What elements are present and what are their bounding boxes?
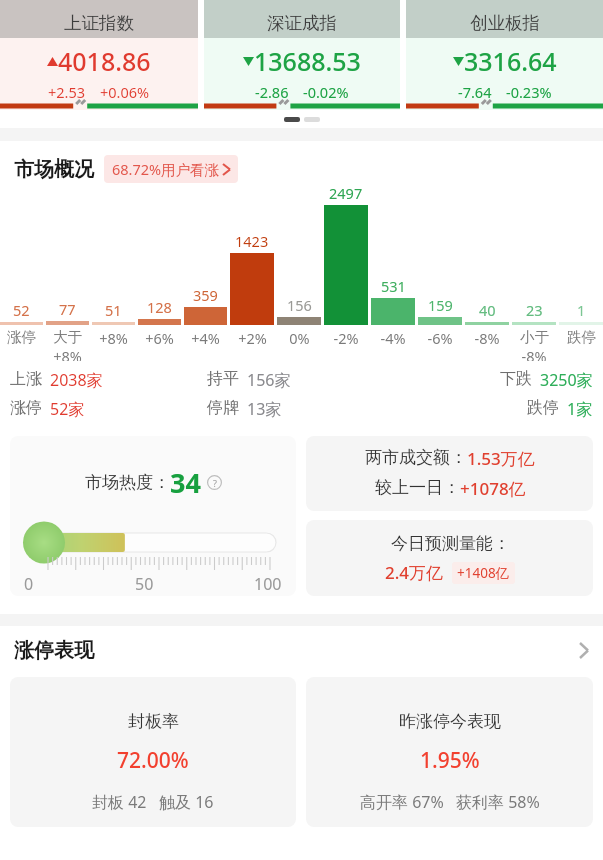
staticText: -8% [521, 346, 547, 361]
staticText: 今日预测量能： [391, 533, 510, 554]
staticText: 1423 [235, 231, 269, 251]
staticText: 封板率 [128, 711, 179, 732]
button[interactable]: 深证成指 [204, 0, 400, 110]
staticText: 0% [289, 328, 310, 348]
staticText: 0 [24, 573, 34, 595]
staticText: 市场概况 [14, 157, 94, 182]
staticText: 创业板指 [470, 12, 540, 34]
staticText: 52家 [50, 398, 85, 420]
staticText: 34 [170, 464, 201, 501]
staticText: 1.95% [420, 746, 480, 775]
staticText: 上证指数 [64, 12, 134, 34]
staticText: 159 [428, 295, 453, 315]
staticText: +4% [191, 328, 220, 348]
staticText: 23 [526, 300, 543, 320]
staticText: 156家 [247, 369, 291, 391]
staticText: 13688.53 [254, 44, 361, 78]
button[interactable]: 涨停表现 [0, 638, 603, 663]
other: 更多 [579, 642, 589, 659]
staticText: 2497 [329, 183, 363, 203]
staticText: 100 [254, 573, 282, 595]
staticText: 68.72%用户看涨 [112, 159, 220, 179]
button[interactable]: 封板率 [10, 677, 296, 827]
staticText: +8% [53, 346, 82, 361]
button[interactable]: 今日预测量能： [306, 520, 593, 596]
staticText: 77 [59, 299, 76, 319]
staticText: 51 [105, 300, 122, 320]
staticText: 50 [135, 573, 154, 595]
staticText: 1家 [567, 398, 593, 420]
staticText: 昨涨停今表现 [399, 711, 501, 732]
staticText: 3316.64 [464, 44, 557, 78]
staticText: -0.23% [506, 82, 552, 102]
staticText: +6% [145, 328, 174, 348]
staticText: 深证成指 [267, 12, 337, 34]
button[interactable]: 市场热度： [10, 436, 296, 596]
staticText: 下跌 [500, 369, 532, 389]
staticText: -6% [427, 328, 453, 348]
staticText: 封板 42 [92, 791, 147, 813]
staticText: 3250家 [540, 369, 593, 391]
staticText: 359 [193, 285, 218, 305]
button[interactable]: 两市成交额： [306, 436, 593, 511]
staticText: 跌停 [567, 328, 596, 346]
staticText: 涨停表现 [14, 638, 94, 663]
staticText: 小于 [520, 328, 549, 346]
staticText: 156 [287, 295, 312, 315]
staticText: +1078亿 [460, 477, 526, 500]
staticText: +8% [99, 328, 128, 348]
staticText: 涨停 [10, 398, 42, 418]
staticText: +0.06% [100, 82, 150, 102]
staticText: 持平 [207, 369, 239, 389]
button[interactable]: 68.72%用户看涨 [104, 155, 238, 183]
staticText: 4018.86 [58, 44, 151, 78]
staticText: -2% [333, 328, 359, 348]
staticText: 40 [479, 300, 496, 320]
staticText: 2038家 [50, 369, 103, 391]
staticText: 1.53万亿 [467, 447, 535, 470]
button[interactable]: 昨涨停今表现 [306, 677, 593, 827]
staticText: 2.4万亿 [385, 561, 444, 584]
staticText: 市场热度： [85, 472, 170, 493]
staticText: +2.53 [48, 82, 86, 102]
staticText: -2.86 [255, 82, 289, 102]
button[interactable]: 说明 [207, 475, 222, 490]
staticText: 高开率 67% [360, 791, 444, 813]
staticText: 72.00% [117, 746, 189, 775]
button[interactable]: 上证指数 [0, 0, 198, 110]
staticText: +1408亿 [457, 564, 510, 582]
staticText: 128 [147, 297, 172, 317]
staticText: 获利率 58% [456, 791, 540, 813]
staticText: 13家 [247, 398, 282, 420]
staticText: -7.64 [458, 82, 492, 102]
staticText: ? [213, 477, 217, 489]
staticText: -0.02% [303, 82, 349, 102]
staticText: 较上一日： [375, 477, 460, 498]
staticText: 触及 16 [159, 791, 214, 813]
staticText: 上涨 [10, 369, 42, 389]
button[interactable]: 创业板指 [406, 0, 603, 110]
staticText: 两市成交额： [365, 447, 467, 468]
staticText: 531 [381, 276, 406, 296]
staticText: 52 [13, 300, 30, 320]
staticText: -4% [380, 328, 406, 348]
staticText: -8% [474, 328, 500, 348]
staticText: 涨停 [7, 328, 36, 346]
staticText: 跌停 [527, 398, 559, 418]
staticText: 停牌 [207, 398, 239, 418]
staticText: 大于 [53, 328, 82, 346]
staticText: 1 [577, 300, 586, 320]
staticText: +2% [238, 328, 267, 348]
